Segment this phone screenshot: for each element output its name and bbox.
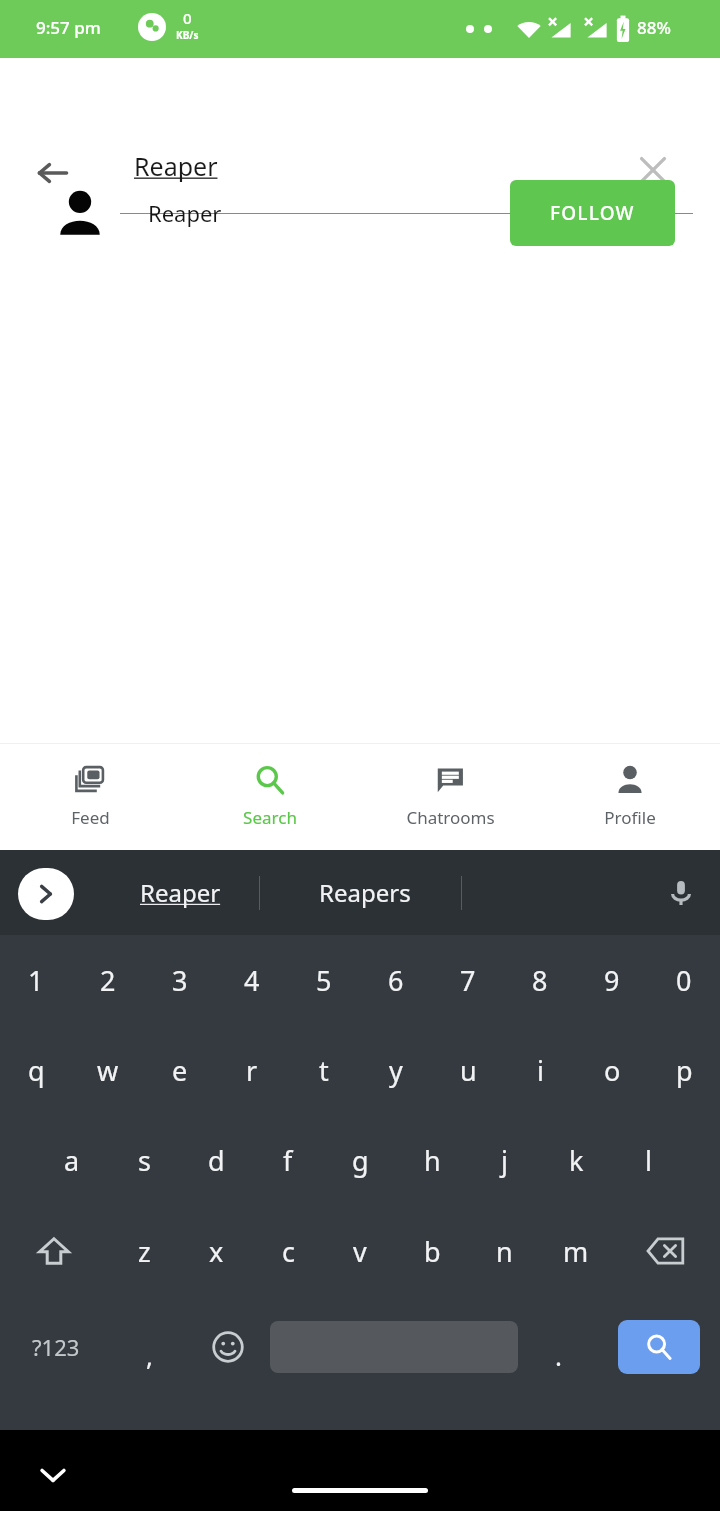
button[interactable]: x: [180, 1205, 252, 1297]
staticText: 6: [388, 962, 404, 999]
staticText: Reaper: [148, 198, 222, 228]
button[interactable]: Clear search: [624, 141, 682, 199]
button[interactable]: u: [432, 1025, 504, 1115]
button[interactable]: 7: [432, 935, 504, 1025]
staticText: ,: [146, 1338, 153, 1373]
button[interactable]: Feed: [0, 744, 180, 850]
button[interactable]: j: [468, 1115, 540, 1205]
staticText: 4: [244, 962, 260, 999]
staticText: 0: [183, 8, 192, 28]
button[interactable]: n: [468, 1205, 540, 1297]
staticText: 9: [604, 962, 620, 999]
staticText: Feed: [71, 806, 110, 829]
button[interactable]: z: [108, 1205, 180, 1297]
button[interactable]: ?123: [0, 1297, 112, 1397]
staticText: x: [209, 1233, 224, 1270]
staticText: v: [353, 1233, 367, 1270]
button[interactable]: Chatrooms: [360, 744, 540, 850]
staticText: f: [283, 1142, 293, 1179]
staticText: w: [97, 1052, 119, 1089]
staticText: p: [676, 1052, 693, 1089]
button[interactable]: Reapers: [275, 850, 455, 935]
staticText: r: [246, 1052, 258, 1089]
button[interactable]: k: [540, 1115, 612, 1205]
button[interactable]: a: [36, 1115, 108, 1205]
button[interactable]: q: [0, 1025, 72, 1115]
staticText: g: [352, 1142, 369, 1179]
staticText: 9:57 pm: [36, 16, 101, 39]
button[interactable]: Emoji: [186, 1297, 270, 1397]
staticText: u: [460, 1052, 477, 1089]
button[interactable]: 0: [648, 935, 720, 1025]
button[interactable]: Backspace: [612, 1205, 720, 1297]
button[interactable]: t: [288, 1025, 360, 1115]
button[interactable]: h: [396, 1115, 468, 1205]
staticText: 2: [100, 962, 116, 999]
staticText: j: [501, 1142, 508, 1179]
button[interactable]: w: [72, 1025, 144, 1115]
button[interactable]: Voice input: [645, 867, 717, 919]
button[interactable]: Reaper: [100, 850, 260, 935]
button[interactable]: y: [360, 1025, 432, 1115]
button[interactable]: b: [396, 1205, 468, 1297]
button[interactable]: Search: [180, 744, 360, 850]
button[interactable]: c: [252, 1205, 324, 1297]
button[interactable]: 9: [576, 935, 648, 1025]
button[interactable]: Profile: [540, 744, 720, 850]
staticText: a: [64, 1142, 80, 1179]
staticText: Chatrooms: [406, 806, 495, 829]
button[interactable]: FOLLOW: [510, 180, 675, 246]
staticText: b: [424, 1233, 441, 1270]
staticText: 7: [460, 962, 476, 999]
button[interactable]: Search: [618, 1320, 700, 1374]
staticText: s: [138, 1142, 151, 1179]
staticText: d: [208, 1142, 225, 1179]
button[interactable]: i: [504, 1025, 576, 1115]
button[interactable]: s: [108, 1115, 180, 1205]
staticText: Reaper: [140, 876, 221, 909]
button[interactable]: Shift: [0, 1205, 108, 1297]
button[interactable]: 6: [360, 935, 432, 1025]
button[interactable]: r: [216, 1025, 288, 1115]
staticText: FOLLOW: [550, 200, 635, 226]
staticText: 1: [28, 962, 44, 999]
button[interactable]: p: [648, 1025, 720, 1115]
button[interactable]: f: [252, 1115, 324, 1205]
button[interactable]: 2: [72, 935, 144, 1025]
staticText: k: [569, 1142, 584, 1179]
staticText: y: [389, 1052, 403, 1089]
staticText: Search: [243, 806, 297, 829]
button[interactable]: d: [180, 1115, 252, 1205]
button[interactable]: More suggestions: [18, 868, 74, 920]
staticText: .: [555, 1338, 562, 1373]
button[interactable]: Back: [22, 142, 84, 204]
button[interactable]: l: [612, 1115, 684, 1205]
button[interactable]: 4: [216, 935, 288, 1025]
button[interactable]: v: [324, 1205, 396, 1297]
button[interactable]: 8: [504, 935, 576, 1025]
staticText: h: [424, 1142, 441, 1179]
staticText: l: [645, 1142, 652, 1179]
staticText: 5: [316, 962, 332, 999]
button[interactable]: 3: [144, 935, 216, 1025]
button[interactable]: 1: [0, 935, 72, 1025]
button[interactable]: ,: [112, 1297, 186, 1397]
button[interactable]: 5: [288, 935, 360, 1025]
staticText: c: [282, 1233, 295, 1270]
staticText: ?123: [32, 1332, 80, 1362]
staticText: q: [28, 1052, 45, 1089]
button[interactable]: Hide keyboard: [22, 1444, 84, 1506]
button[interactable]: .: [518, 1297, 598, 1397]
staticText: m: [563, 1233, 589, 1270]
button[interactable]: o: [576, 1025, 648, 1115]
button[interactable]: g: [324, 1115, 396, 1205]
staticText: 88%: [637, 16, 671, 39]
staticText: 0: [676, 962, 692, 999]
button[interactable]: m: [540, 1205, 612, 1297]
staticText: 3: [172, 962, 188, 999]
button[interactable]: Reaper: [0, 158, 720, 268]
staticText: t: [319, 1052, 329, 1089]
button[interactable]: e: [144, 1025, 216, 1115]
staticText: Reapers: [319, 876, 411, 909]
